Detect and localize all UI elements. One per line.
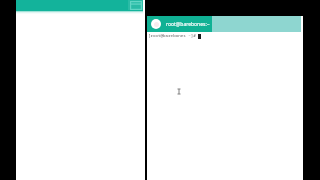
staticText: root@barebones:~	[166, 21, 210, 28]
button[interactable]: root@barebones:~	[147, 16, 212, 32]
button[interactable]: Maximize window	[128, 0, 143, 10]
staticText: [root@barebones ~]#	[148, 33, 196, 39]
button[interactable]: Terminal output	[147, 32, 303, 180]
